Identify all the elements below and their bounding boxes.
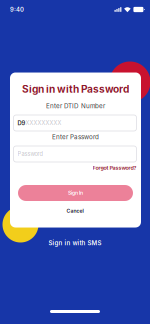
staticText: Sign in with SMS	[48, 239, 101, 247]
staticText: Enter DTID Number	[46, 102, 105, 110]
staticText: Forgot Password?	[92, 164, 136, 171]
staticText: D9	[17, 119, 25, 127]
staticText: Cancel	[66, 208, 83, 214]
staticText: Sign In	[68, 190, 83, 196]
button[interactable]: Forgot Password?	[84, 163, 136, 172]
staticText: Password	[17, 151, 42, 157]
staticText: Enter Password	[52, 133, 99, 141]
staticText: XXXXXXXXX	[25, 120, 61, 126]
button[interactable]: Cancel	[51, 206, 99, 216]
button[interactable]: Sign In	[18, 185, 133, 201]
button[interactable]: Sign in with SMS	[30, 237, 120, 249]
staticText: Sign in with Password	[22, 83, 129, 95]
staticText: 9:40	[10, 6, 24, 13]
